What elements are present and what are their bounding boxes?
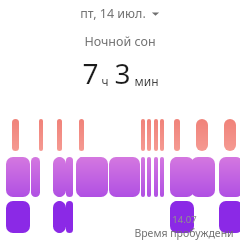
- staticText: мин: [134, 73, 159, 89]
- staticText: 14.07: [172, 213, 197, 226]
- staticText: 7: [82, 54, 99, 92]
- staticText: пт, 14 июл.: [80, 5, 146, 22]
- button[interactable]: пт, 14 июл.: [68, 2, 172, 25]
- staticText: 3: [114, 54, 131, 92]
- staticText: ч: [101, 73, 109, 89]
- button[interactable]: График фаз сна: [0, 0, 240, 240]
- staticText: Ночной сон: [84, 33, 156, 50]
- staticText: Время пробуждени: [134, 226, 234, 240]
